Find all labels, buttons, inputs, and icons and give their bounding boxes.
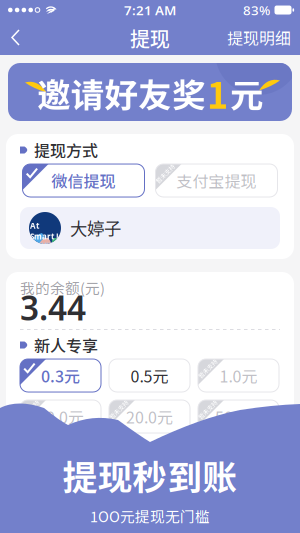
staticText: 暂未支持 bbox=[195, 405, 219, 414]
staticText: 支付宝提现 bbox=[176, 169, 256, 192]
staticText: 提现明细 bbox=[227, 26, 291, 49]
staticText: 元 bbox=[230, 69, 263, 117]
staticText: 10.0元 bbox=[37, 405, 84, 428]
button[interactable]: 0.3元 bbox=[20, 359, 101, 392]
staticText: 提现方式 bbox=[34, 138, 98, 162]
staticText: 大婷子 bbox=[70, 215, 121, 241]
staticText: 微信提现 bbox=[51, 169, 115, 192]
button[interactable]: 提现明细 bbox=[218, 20, 300, 55]
button[interactable]: 邀请好友奖 bbox=[8, 63, 292, 121]
staticText: 1OO元提现无门槛 bbox=[90, 505, 210, 526]
button[interactable]: 暂未支持 bbox=[20, 400, 101, 433]
staticText: 50.0元 bbox=[215, 405, 262, 428]
button[interactable]: At Smart L bbox=[20, 207, 280, 249]
staticText: 暂未支持 bbox=[153, 169, 177, 178]
staticText: 20.0元 bbox=[126, 405, 173, 428]
staticText: 提现 bbox=[130, 23, 170, 52]
button[interactable]: 暂未支持 bbox=[155, 164, 277, 197]
button[interactable]: 暂未支持 bbox=[198, 400, 279, 433]
staticText: 我的余额(元) bbox=[20, 277, 105, 298]
staticText: 提现秒到账 bbox=[62, 450, 237, 500]
button[interactable]: 微信提现 bbox=[22, 164, 144, 197]
staticText: 暂未支持 bbox=[195, 364, 219, 373]
button[interactable]: 0.5元 bbox=[109, 359, 190, 392]
staticText: 暂未支持 bbox=[106, 405, 130, 414]
button[interactable]: 暂未支持 bbox=[109, 400, 190, 433]
staticText: 83% bbox=[243, 1, 270, 19]
staticText: 3.44 bbox=[20, 285, 86, 330]
staticText: At Smart L bbox=[30, 220, 60, 242]
staticText: ▪▪▪▪ ▪▪▪▪▪ bbox=[35, 242, 54, 245]
button[interactable]: Back bbox=[0, 22, 38, 53]
staticText: 1.0元 bbox=[219, 364, 257, 387]
staticText: 暂未支持 bbox=[17, 405, 41, 414]
staticText: 7:21 AM bbox=[124, 1, 176, 19]
staticText: 邀请好友奖 bbox=[37, 69, 205, 117]
staticText: 1 bbox=[207, 67, 228, 119]
button[interactable]: 暂未支持 bbox=[198, 359, 279, 392]
staticText: 新人专享 bbox=[34, 333, 98, 357]
staticText: 0.3元 bbox=[41, 364, 80, 387]
staticText: 0.5元 bbox=[130, 364, 168, 387]
